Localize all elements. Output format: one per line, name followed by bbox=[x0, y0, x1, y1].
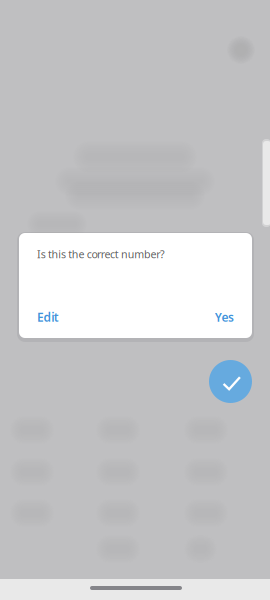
button[interactable]: Confirm bbox=[209, 360, 252, 403]
staticText: Edit bbox=[37, 309, 59, 325]
button[interactable]: Yes bbox=[207, 302, 242, 332]
button[interactable]: Edit bbox=[29, 302, 67, 332]
staticText: Is this the correct number? bbox=[37, 247, 165, 261]
staticText: Yes bbox=[215, 309, 234, 325]
